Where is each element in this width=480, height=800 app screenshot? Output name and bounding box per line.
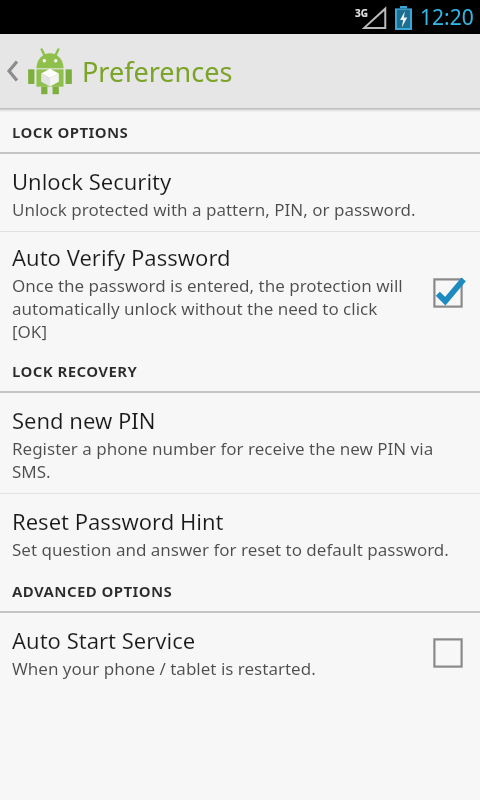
- staticText: Preferences: [82, 53, 233, 90]
- button[interactable]: Auto Verify Password: [0, 232, 480, 351]
- staticText: ADVANCED OPTIONS: [12, 581, 173, 601]
- staticText: Unlock Security: [12, 166, 172, 196]
- button[interactable]: Unchecked: [426, 631, 470, 675]
- staticText: Unlock protected with a pattern, PIN, or…: [12, 198, 416, 221]
- staticText: Send new PIN: [12, 405, 156, 435]
- staticText: 3G: [355, 6, 368, 20]
- button[interactable]: Auto Start Service: [0, 613, 480, 692]
- staticText: 12:20: [420, 3, 474, 32]
- button[interactable]: Checked: [426, 271, 470, 315]
- staticText: Set question and answer for reset to def…: [12, 538, 449, 561]
- button[interactable]: Reset Password Hint: [0, 494, 480, 571]
- button[interactable]: Unlock Security: [0, 154, 480, 231]
- staticText: When your phone / tablet is restarted.: [12, 657, 316, 680]
- staticText: LOCK OPTIONS: [12, 122, 129, 142]
- staticText: Auto Start Service: [12, 625, 196, 655]
- staticText: LOCK RECOVERY: [12, 361, 138, 381]
- staticText: Once the password is entered, the protec…: [12, 274, 416, 343]
- button[interactable]: Navigate up, Preferences: [0, 34, 480, 108]
- staticText: Auto Verify Password: [12, 242, 231, 272]
- button[interactable]: Send new PIN: [0, 393, 480, 493]
- staticText: Reset Password Hint: [12, 506, 224, 536]
- staticText: Register a phone number for receive the …: [12, 437, 470, 483]
